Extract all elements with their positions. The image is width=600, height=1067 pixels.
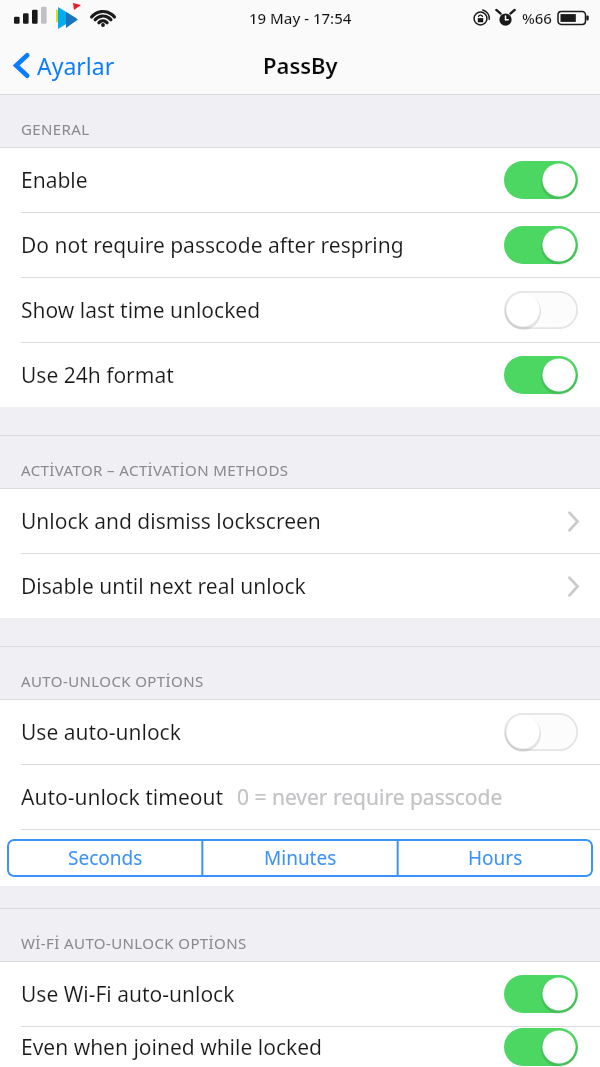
button[interactable]: Hours: [398, 839, 593, 877]
button[interactable]: Back: [0, 42, 129, 89]
button[interactable]: Use 24h format: [0, 343, 600, 407]
staticText: Show last time unlocked: [21, 296, 504, 325]
staticText: Do not require passcode after respring: [21, 231, 504, 260]
staticText: Ayarlar: [37, 50, 115, 81]
staticText: 0 = never require passcode: [237, 783, 503, 812]
staticText: AUTO-UNLOCK OPTİONS: [21, 671, 204, 691]
staticText: Use 24h format: [21, 361, 504, 390]
other: Back: [14, 53, 29, 78]
staticText: Enable: [21, 166, 504, 195]
staticText: Use Wi-Fi auto-unlock: [21, 980, 504, 1009]
staticText: 19 May - 17:54: [249, 8, 352, 28]
button[interactable]: Unlock and dismiss lockscreen: [0, 489, 600, 553]
staticText: Auto-unlock timeout: [21, 783, 224, 812]
staticText: Even when joined while locked: [21, 1033, 504, 1062]
staticText: ACTİVATOR – ACTİVATİON METHODS: [21, 460, 289, 480]
staticText: Unlock and dismiss lockscreen: [21, 507, 567, 536]
button[interactable]: Disable until next real unlock: [0, 554, 600, 618]
staticText: GENERAL: [21, 119, 90, 139]
staticText: Minutes: [264, 845, 337, 871]
staticText: Use auto-unlock: [21, 718, 504, 747]
staticText: Disable until next real unlock: [21, 572, 567, 601]
staticText: %66: [522, 8, 552, 28]
staticText: Seconds: [68, 845, 143, 871]
button[interactable]: Enable: [0, 148, 600, 212]
button[interactable]: Seconds: [7, 839, 203, 877]
button[interactable]: Do not require passcode after respring: [0, 213, 600, 277]
staticText: PassBy: [263, 50, 338, 80]
button[interactable]: Use Wi-Fi auto-unlock: [0, 962, 600, 1026]
button[interactable]: Minutes: [203, 839, 398, 877]
button[interactable]: Show last time unlocked: [0, 278, 600, 342]
staticText: Wİ-Fİ AUTO-UNLOCK OPTİONS: [21, 933, 247, 953]
button[interactable]: Use auto-unlock: [0, 700, 600, 764]
button[interactable]: Even when joined while locked: [0, 1027, 600, 1067]
button[interactable]: Auto-unlock timeout: [0, 765, 600, 829]
staticText: Hours: [468, 845, 523, 871]
